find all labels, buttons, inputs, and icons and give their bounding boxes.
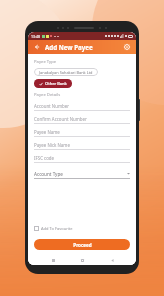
staticText: Account Type	[34, 171, 63, 177]
button[interactable]: Account Number	[34, 101, 130, 114]
staticText: Account Number	[34, 103, 69, 109]
staticText: 13:48	[31, 34, 40, 39]
button[interactable]: Settings	[122, 42, 132, 52]
staticText: Janakalyan Sahakari Bank Ltd	[39, 70, 93, 75]
staticText: Add To Favourite	[41, 226, 73, 231]
button[interactable]: Confirm Account Number	[34, 114, 130, 127]
button[interactable]: Home	[77, 255, 87, 265]
staticText: Payee Type	[34, 59, 57, 65]
staticText: IFSC code	[34, 155, 55, 161]
button[interactable]: Back	[107, 255, 117, 265]
button[interactable]: Janakalyan Sahakari Bank Ltd	[34, 68, 98, 76]
staticText: Add New Payee	[45, 43, 93, 51]
staticText: Payee Name	[34, 129, 60, 135]
button[interactable]: Add To Favourite	[34, 224, 73, 233]
staticText: Payee Nick Name	[34, 142, 70, 148]
button[interactable]: Proceed	[34, 239, 130, 250]
staticText: Payee Details	[34, 92, 61, 98]
button[interactable]: Recents	[48, 255, 58, 265]
button[interactable]: Back	[32, 42, 42, 52]
staticText: Proceed	[73, 242, 92, 248]
staticText: Other Bank	[45, 81, 67, 86]
button[interactable]: Payee Name	[34, 127, 130, 140]
staticText: Confirm Account Number	[34, 116, 87, 122]
button[interactable]: IFSC code	[34, 153, 130, 166]
button[interactable]: Account Type	[34, 169, 130, 179]
button[interactable]: Payee Nick Name	[34, 140, 130, 153]
button[interactable]: Other Bank	[34, 79, 72, 88]
